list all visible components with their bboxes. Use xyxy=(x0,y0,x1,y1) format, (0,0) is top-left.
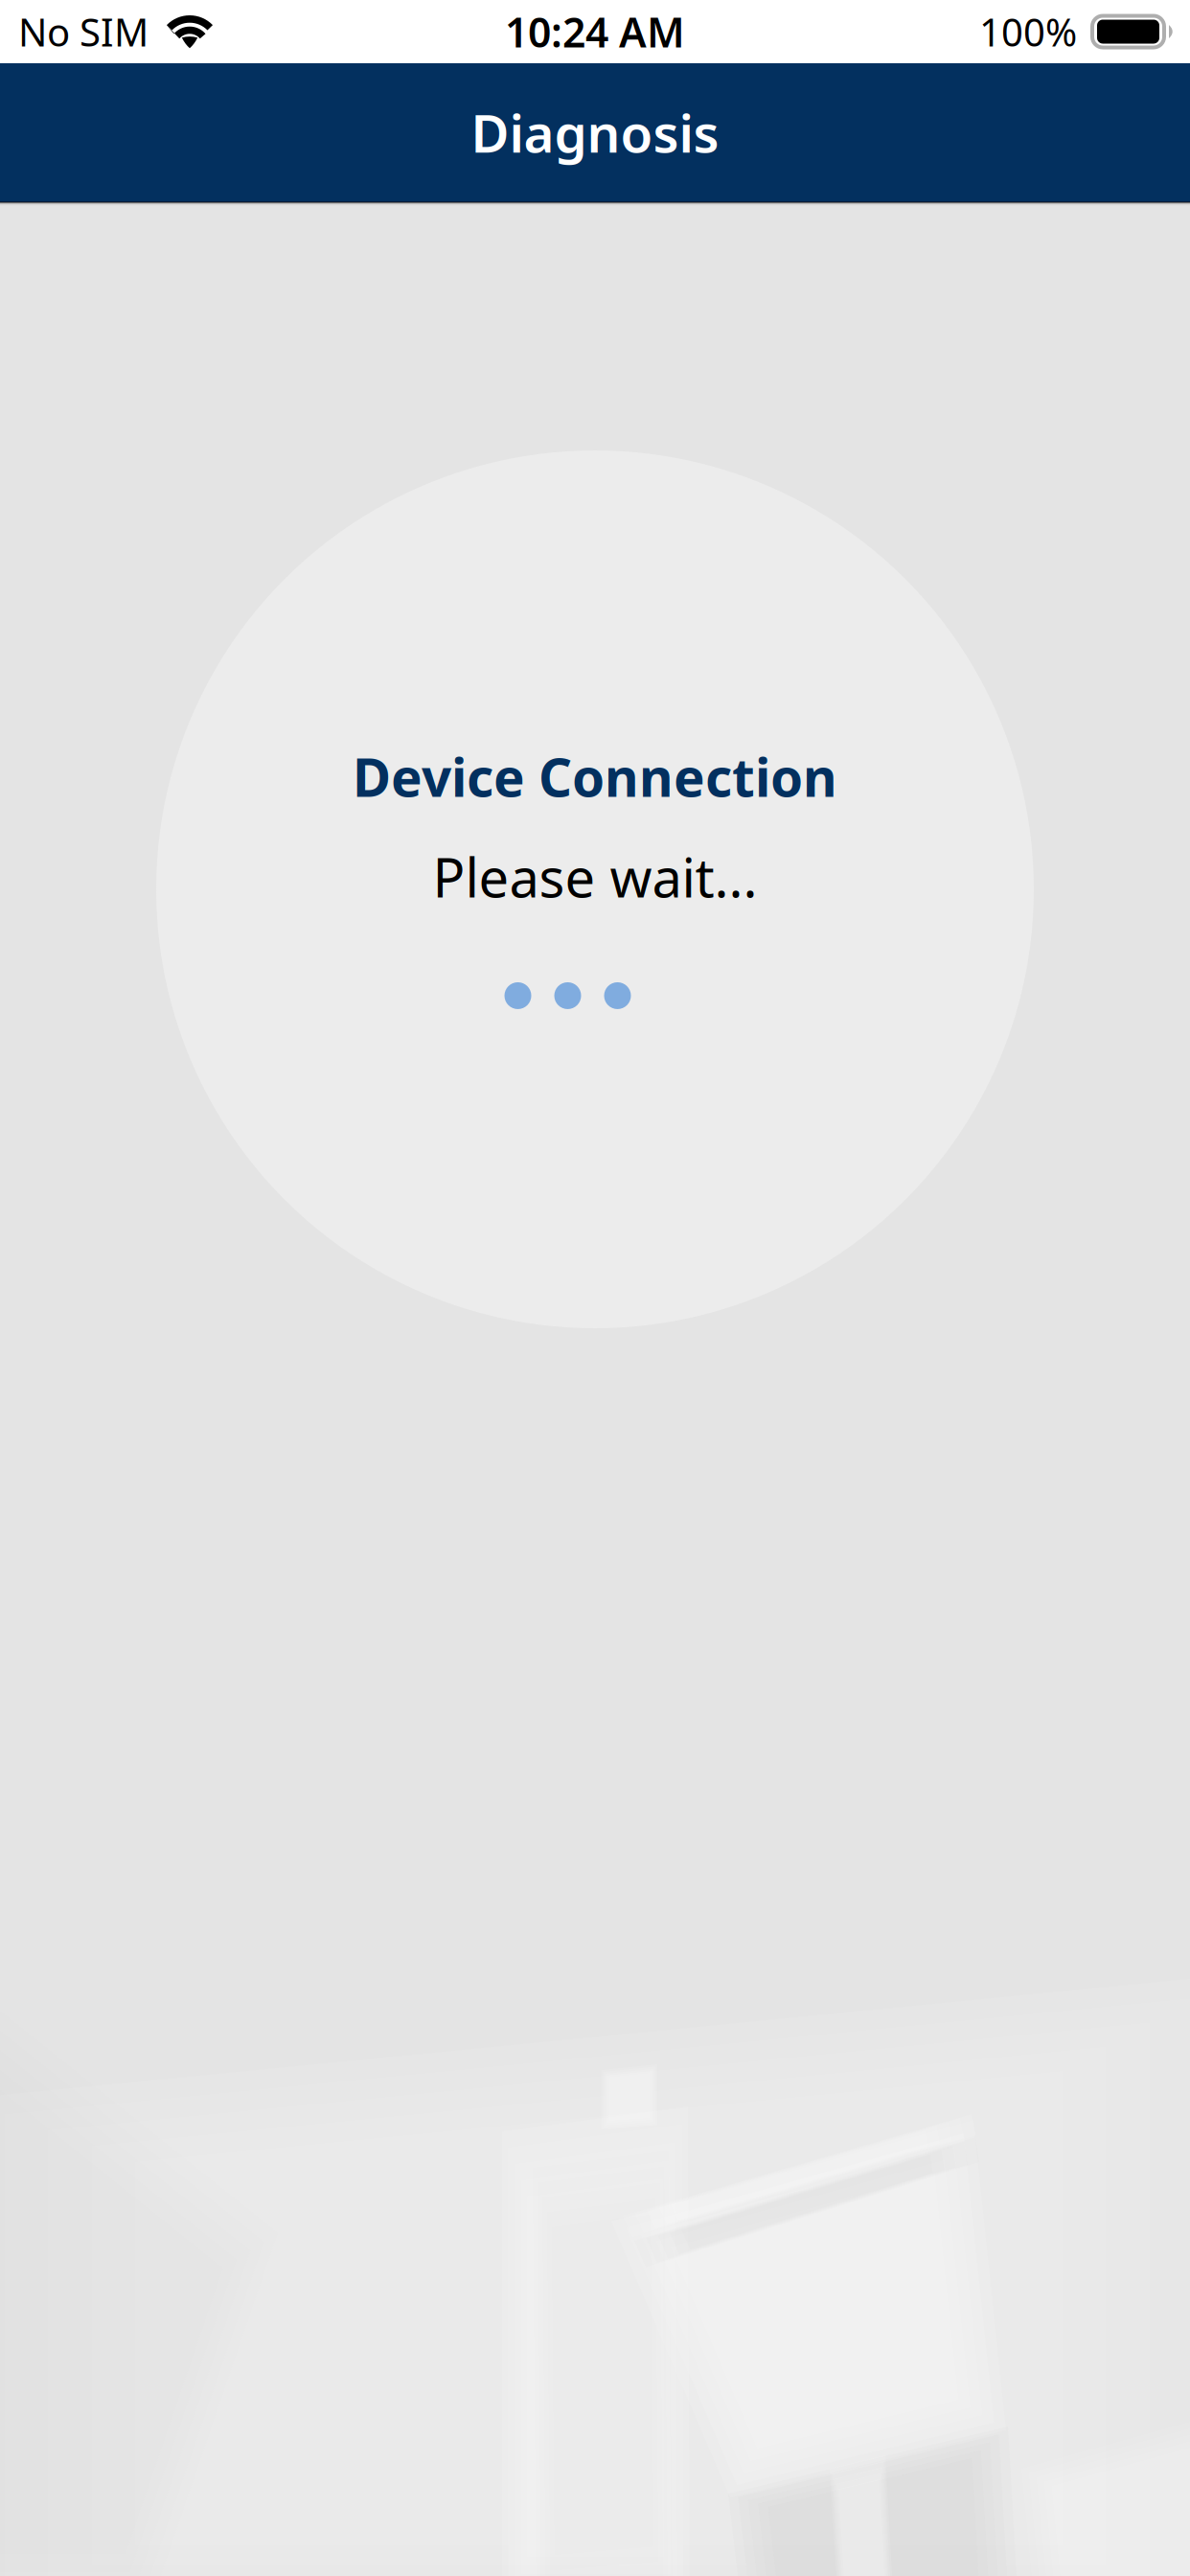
staticText: Diagnosis xyxy=(471,97,719,167)
staticText: 10:24 AM xyxy=(505,5,685,59)
staticText: No SIM xyxy=(18,6,149,57)
staticText: Device Connection xyxy=(353,742,837,811)
staticText: 100% xyxy=(979,6,1077,57)
staticText: Please wait... xyxy=(433,841,757,912)
